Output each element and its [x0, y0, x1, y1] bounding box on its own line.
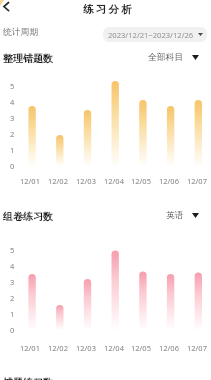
staticText: 12/01 [20, 343, 40, 353]
staticText: 12/06 [159, 343, 179, 353]
staticText: 12/07 [187, 176, 207, 186]
button[interactable]: 全部科目 [148, 52, 199, 63]
staticText: 3 [10, 113, 15, 123]
staticText: 12/07 [187, 343, 207, 353]
staticText: 错题练习数 [3, 376, 53, 380]
staticText: 1 [10, 309, 15, 319]
staticText: 12/05 [131, 176, 151, 186]
staticText: 英语 [166, 210, 184, 221]
staticText: 全部科目 [148, 52, 184, 63]
staticText: 2023/12/21~2023/12/26 [108, 30, 194, 40]
staticText: 1 [10, 145, 15, 155]
staticText: 12/06 [159, 176, 179, 186]
button[interactable]: 2023/12/21~2023/12/26 [103, 27, 207, 42]
staticText: 组卷练习数 [3, 210, 53, 223]
staticText: 整理错题数 [3, 52, 53, 65]
staticText: 12/03 [76, 176, 96, 186]
staticText: 12/01 [20, 176, 40, 186]
button[interactable] [0, 0, 16, 18]
button[interactable]: 练习分析 [83, 3, 135, 16]
staticText: 2 [10, 129, 15, 139]
button[interactable]: 英语 [166, 210, 199, 221]
staticText: 5 [10, 81, 15, 91]
staticText: 4 [10, 97, 15, 107]
staticText: 练习分析 [83, 3, 135, 16]
staticText: 4 [10, 261, 15, 271]
staticText: 12/02 [48, 176, 68, 186]
staticText: 12/03 [76, 343, 96, 353]
staticText: 3 [10, 277, 15, 287]
staticText: 5 [10, 245, 15, 255]
staticText: 12/02 [48, 343, 68, 353]
staticText: 0 [10, 161, 15, 171]
staticText: 12/05 [131, 343, 151, 353]
staticText: 2 [10, 293, 15, 303]
staticText: 12/04 [104, 176, 124, 186]
staticText: 0 [10, 325, 15, 335]
staticText: 12/04 [104, 343, 124, 353]
staticText: 统计周期 [3, 27, 39, 38]
